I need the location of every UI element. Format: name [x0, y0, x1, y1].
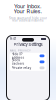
staticText: Block trackers [11, 58, 24, 66]
button[interactable]: Hide IP address [9, 53, 46, 59]
button[interactable]: Private relay [9, 65, 46, 71]
button[interactable]: Block trackers [9, 59, 46, 65]
staticText: Hide IP address [11, 52, 24, 60]
staticText: MAIL PRIVACY [10, 49, 31, 52]
staticText: real address instantly. [12, 19, 44, 22]
staticText: Your Inbox. [14, 3, 42, 10]
staticText: Your Rules. [13, 8, 42, 15]
staticText: Privacy Settings [13, 42, 42, 47]
staticText: Private relay [11, 66, 31, 70]
staticText: 9:41 [10, 37, 16, 41]
staticText: Stop spam and hide your [9, 16, 47, 20]
